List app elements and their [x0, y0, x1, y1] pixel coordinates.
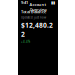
staticText: Account Overview	[29, 2, 46, 12]
staticText: +4.4%	[21, 40, 30, 44]
staticText: Updated just now	[21, 16, 46, 19]
staticText: ▮▮	[51, 0, 55, 5]
staticText: Total Balance	[21, 9, 46, 14]
staticText: 9:41	[21, 0, 28, 5]
staticText: $12,480.22	[21, 21, 53, 39]
